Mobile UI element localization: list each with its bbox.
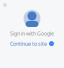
button[interactable]: Close bbox=[0, 0, 10, 10]
staticText: Sign in with Google bbox=[10, 30, 54, 37]
staticText: Continue to site bbox=[10, 40, 47, 47]
